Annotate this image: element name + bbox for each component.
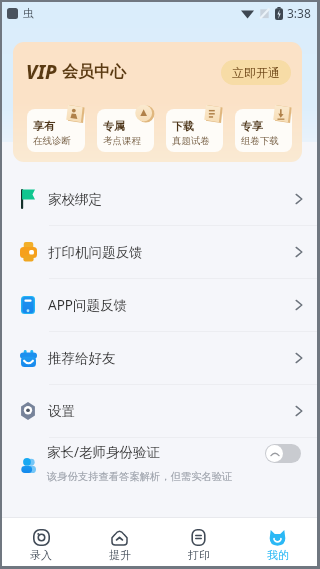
button[interactable]: Toggle identity verification — [265, 444, 301, 463]
staticText: 组卷下载 — [241, 135, 279, 147]
staticText: 真题试卷 — [172, 135, 210, 147]
button[interactable]: APP问题反馈 — [2, 279, 317, 331]
staticText: APP问题反馈 — [48, 296, 127, 314]
staticText: 家校绑定 — [48, 191, 102, 208]
staticText: 专属 — [103, 119, 125, 133]
staticText: 专享 — [241, 119, 263, 133]
staticText: 该身份支持查看答案解析，但需实名验证 — [47, 470, 233, 483]
button[interactable]: 设置 — [2, 385, 317, 437]
button[interactable]: 专属 — [97, 109, 154, 152]
staticText: 打印 — [188, 548, 210, 562]
staticText: 下载 — [172, 119, 194, 133]
staticText: 家长/老师身份验证 — [47, 443, 161, 461]
staticText: 我的 — [267, 548, 289, 562]
staticText: 立即开通 — [232, 65, 280, 80]
button[interactable]: 下载 — [166, 109, 223, 152]
button[interactable]: 享有 — [27, 109, 85, 152]
staticText: 推荐给好友 — [48, 350, 116, 367]
button[interactable]: 家校绑定 — [2, 173, 317, 225]
button[interactable]: 打印机问题反馈 — [2, 226, 317, 278]
staticText: 提升 — [109, 548, 131, 562]
button[interactable]: 打印 — [159, 529, 238, 566]
staticText: 考点课程 — [103, 135, 141, 147]
staticText: 设置 — [48, 403, 75, 420]
button[interactable]: 推荐给好友 — [2, 332, 317, 384]
button[interactable]: 家长/老师身份验证 — [2, 438, 317, 496]
staticText: 享有 — [33, 119, 55, 133]
button[interactable]: 提升 — [80, 529, 159, 566]
staticText: 会员中心 — [62, 62, 126, 82]
staticText: 虫 — [23, 6, 34, 20]
button[interactable]: 专享 — [235, 109, 292, 152]
staticText: 录入 — [30, 548, 52, 562]
button[interactable]: 我的 — [238, 529, 317, 566]
staticText: 3:38 — [287, 5, 311, 21]
button[interactable]: 立即开通 — [221, 60, 291, 85]
staticText: 在线诊断 — [33, 135, 71, 147]
staticText: 打印机问题反馈 — [48, 244, 143, 261]
button[interactable]: 录入 — [2, 529, 80, 566]
staticText: VIP — [26, 59, 57, 85]
